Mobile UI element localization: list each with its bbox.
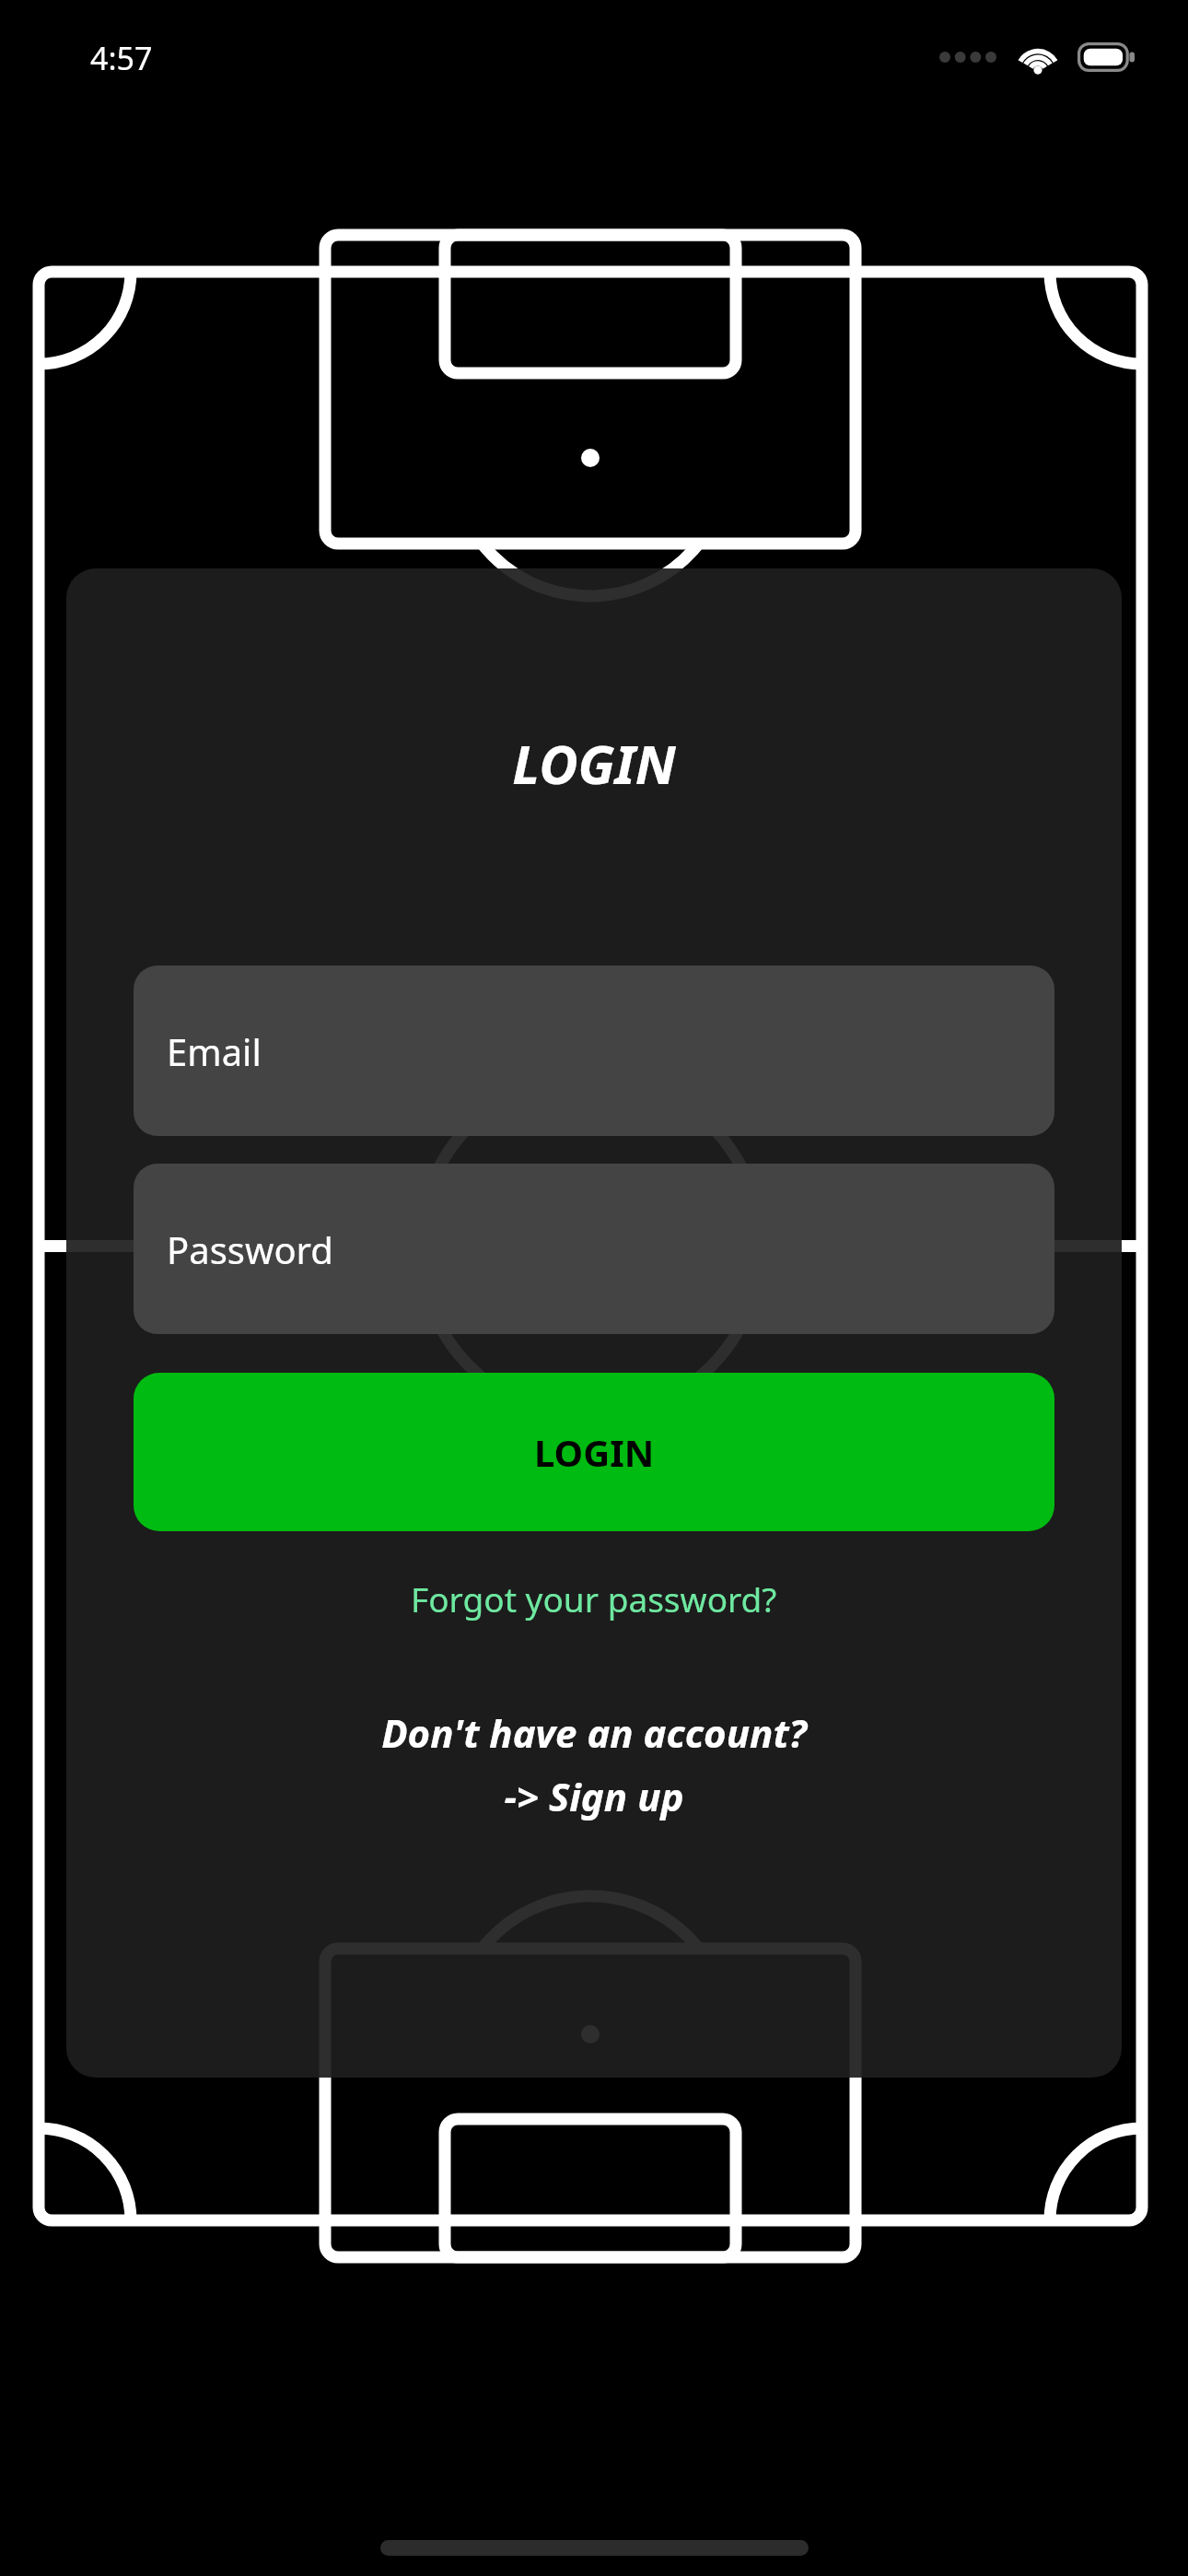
button[interactable]: Email bbox=[134, 966, 1054, 1136]
button[interactable]: Password bbox=[134, 1164, 1054, 1334]
staticText: Don't have an account? bbox=[381, 1706, 807, 1759]
staticText: Forgot your password? bbox=[411, 1575, 777, 1622]
button[interactable]: Don't have an account? bbox=[359, 1701, 829, 1828]
staticText: Email bbox=[167, 1026, 262, 1076]
button[interactable]: Forgot your password? bbox=[392, 1568, 796, 1629]
button[interactable]: LOGIN bbox=[134, 1373, 1054, 1531]
staticText: Password bbox=[167, 1224, 333, 1274]
staticText: -> Sign up bbox=[504, 1770, 684, 1822]
staticText: LOGIN bbox=[512, 727, 676, 800]
staticText: 4:57 bbox=[90, 37, 153, 79]
staticText: LOGIN bbox=[534, 1427, 655, 1477]
